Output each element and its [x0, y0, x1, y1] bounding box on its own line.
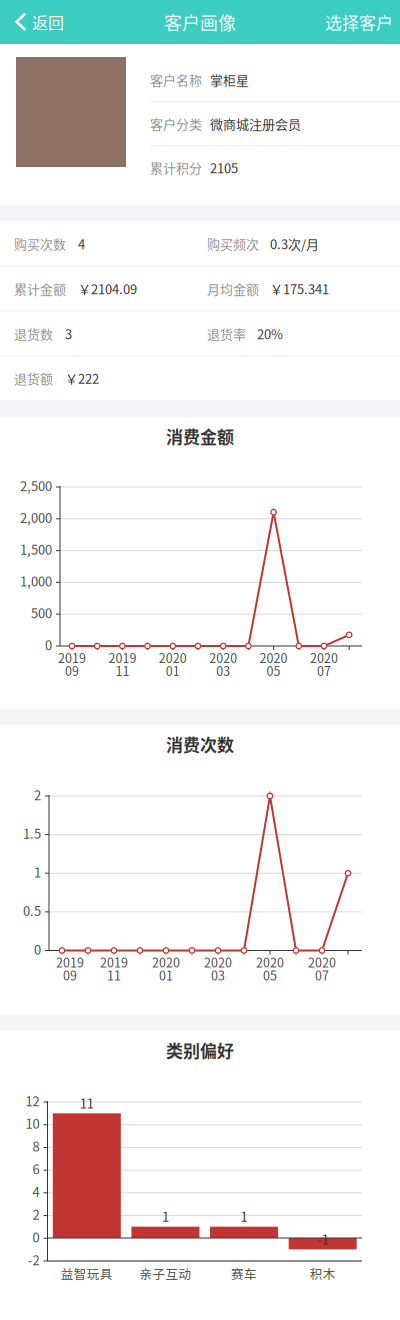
staticText: 亲子互动: [139, 1264, 191, 1283]
staticText: 2019: [58, 648, 86, 667]
staticText: 类别偏好: [166, 1038, 234, 1062]
staticText: 选择客户: [325, 10, 393, 34]
staticText: 赛车: [231, 1264, 257, 1283]
staticText: 01: [159, 966, 173, 984]
staticText: 10: [25, 1114, 39, 1133]
staticText: 2,000: [20, 508, 52, 527]
staticText: 2: [34, 785, 41, 804]
staticText: 2019: [108, 648, 136, 667]
staticText: 2019: [100, 953, 128, 971]
staticText: 4: [32, 1182, 39, 1201]
staticText: 2020: [152, 953, 180, 971]
staticText: 0.5: [23, 901, 41, 920]
staticText: ￥222: [65, 369, 99, 387]
staticText: 3: [65, 324, 72, 343]
staticText: -1: [317, 1229, 329, 1248]
staticText: 消费金额: [166, 424, 234, 448]
staticText: 0: [32, 1227, 39, 1246]
staticText: 2020: [308, 953, 336, 971]
staticText: 客户分类: [150, 114, 202, 133]
staticText: 2020: [204, 953, 232, 971]
staticText: 累计积分: [150, 158, 202, 177]
staticText: ￥175.341: [270, 279, 329, 298]
button[interactable]: 返回: [0, 0, 110, 44]
staticText: 2020: [260, 648, 288, 667]
staticText: 09: [63, 966, 77, 984]
staticText: 1: [162, 1207, 169, 1225]
staticText: 购买频次: [207, 234, 259, 253]
staticText: 2020: [310, 648, 338, 667]
staticText: 1,500: [20, 540, 52, 558]
staticText: 累计金额: [14, 279, 66, 298]
staticText: -2: [27, 1250, 39, 1269]
staticText: 月均金额: [207, 279, 259, 298]
staticText: 积木: [310, 1264, 336, 1283]
staticText: 微商城注册会员: [210, 114, 301, 133]
staticText: 1: [241, 1207, 248, 1225]
staticText: 1,000: [20, 571, 52, 590]
staticText: 4: [78, 234, 85, 253]
staticText: 0: [45, 635, 52, 654]
staticText: 07: [315, 966, 329, 984]
staticText: 2020: [256, 953, 284, 971]
staticText: 11: [115, 661, 129, 680]
staticText: 05: [267, 661, 281, 680]
staticText: 退货数: [14, 324, 53, 343]
staticText: 05: [263, 966, 277, 984]
staticText: 消费次数: [166, 732, 234, 756]
staticText: 1.5: [23, 824, 41, 842]
staticText: 2105: [210, 158, 238, 177]
staticText: 6: [32, 1159, 39, 1178]
staticText: 2: [32, 1205, 39, 1223]
staticText: 1: [34, 862, 41, 881]
staticText: 退货率: [207, 324, 246, 343]
staticText: ￥2104.09: [78, 279, 137, 298]
staticText: 2,500: [20, 476, 52, 495]
staticText: 益智玩具: [61, 1264, 113, 1283]
staticText: 8: [32, 1136, 39, 1155]
button[interactable]: 选择客户: [290, 0, 400, 44]
staticText: 500: [31, 603, 52, 622]
staticText: 返回: [32, 10, 64, 34]
staticText: 12: [25, 1091, 39, 1110]
staticText: 2020: [159, 648, 187, 667]
staticText: 客户名称: [150, 70, 202, 89]
staticText: 退货额: [14, 369, 53, 387]
staticText: 20%: [257, 324, 283, 343]
staticText: 09: [65, 661, 79, 680]
staticText: 01: [166, 661, 180, 680]
staticText: 03: [211, 966, 225, 984]
staticText: 掌柜星: [210, 70, 249, 89]
staticText: 客户画像: [164, 9, 236, 35]
staticText: 07: [317, 661, 331, 680]
staticText: 0.3次/月: [270, 234, 319, 253]
staticText: 0: [34, 940, 41, 958]
staticText: 2019: [56, 953, 84, 971]
staticText: 11: [107, 966, 121, 984]
staticText: 11: [80, 1093, 94, 1112]
staticText: 购买次数: [14, 234, 66, 253]
staticText: 03: [216, 661, 230, 680]
staticText: 2020: [209, 648, 237, 667]
